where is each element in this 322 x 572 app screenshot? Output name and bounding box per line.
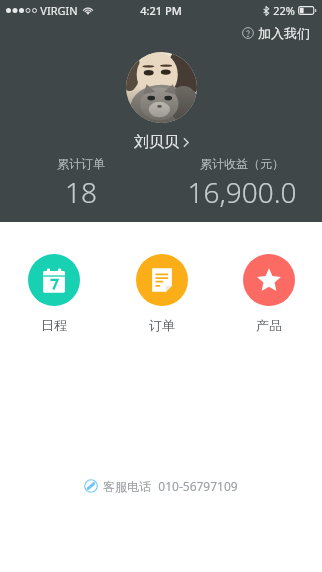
- button[interactable]: Orders: [108, 252, 215, 335]
- button[interactable]: Profile photo: [126, 52, 197, 123]
- button[interactable]: 累计收益（元）: [161, 154, 322, 213]
- button[interactable]: 客服电话: [78, 475, 244, 497]
- staticText: 4:21 PM: [140, 3, 182, 18]
- button[interactable]: Schedule: [0, 252, 108, 335]
- staticText: 产品: [256, 317, 282, 333]
- button[interactable]: Products: [215, 252, 322, 335]
- staticText: 累计收益（元）: [200, 156, 284, 171]
- other: Schedule: [28, 254, 80, 306]
- staticText: 22%: [273, 3, 295, 18]
- other: Orders: [136, 254, 188, 306]
- staticText: VIRGIN: [40, 3, 78, 18]
- staticText: 客服电话: [103, 479, 151, 494]
- button[interactable]: 刘贝贝: [130, 132, 193, 153]
- staticText: 18: [65, 173, 97, 211]
- staticText: 010-56797109: [158, 478, 238, 494]
- staticText: 16,900.0: [187, 173, 297, 211]
- staticText: 日程: [41, 317, 67, 333]
- staticText: 订单: [149, 317, 175, 333]
- button[interactable]: 加入我们: [238, 22, 314, 44]
- staticText: 刘贝贝: [134, 133, 179, 152]
- other: Products: [243, 254, 295, 306]
- staticText: 累计订单: [57, 156, 105, 171]
- staticText: 加入我们: [258, 25, 310, 41]
- button[interactable]: 累计订单: [0, 154, 161, 213]
